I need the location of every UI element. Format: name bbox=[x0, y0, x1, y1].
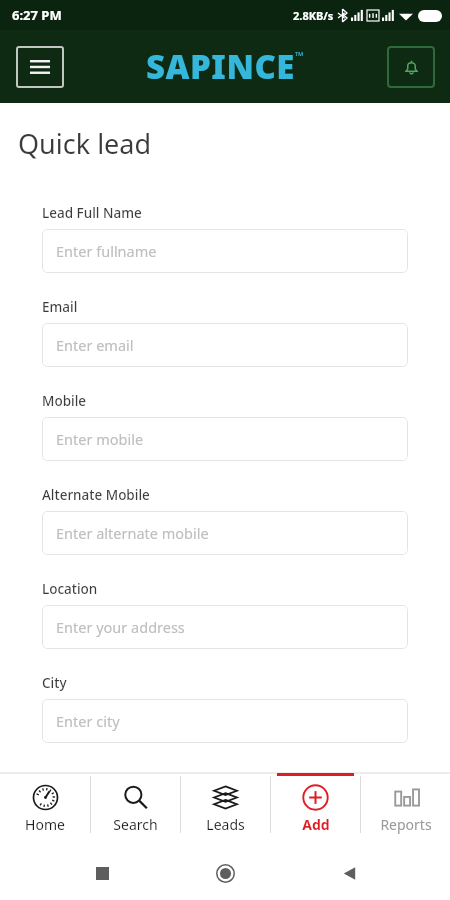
staticText: 6:27 PM bbox=[12, 6, 62, 24]
button[interactable]: Reports bbox=[361, 773, 450, 845]
button[interactable]: Enter mobile bbox=[42, 417, 408, 461]
staticText: Email bbox=[42, 298, 78, 316]
staticText: Mobile bbox=[42, 392, 87, 410]
button[interactable]: Notifications bbox=[387, 46, 435, 88]
button[interactable]: Enter your address bbox=[42, 605, 408, 649]
button[interactable]: Enter alternate mobile bbox=[42, 511, 408, 555]
staticText: Home bbox=[25, 815, 65, 834]
button[interactable]: Enter email bbox=[42, 323, 408, 367]
button[interactable]: Enter city bbox=[42, 699, 408, 743]
staticText: Enter alternate mobile bbox=[56, 523, 209, 543]
staticText: ™ bbox=[295, 48, 304, 63]
button[interactable]: Enter fullname bbox=[42, 229, 408, 273]
staticText: Reports bbox=[380, 815, 432, 834]
staticText: Alternate Mobile bbox=[42, 486, 150, 504]
staticText: Location bbox=[42, 580, 98, 598]
staticText: Lead Full Name bbox=[42, 204, 142, 222]
staticText: 2.8KB/s bbox=[293, 8, 334, 23]
button[interactable]: Home bbox=[203, 851, 247, 895]
staticText: Leads bbox=[206, 815, 245, 834]
staticText: Enter email bbox=[56, 335, 134, 355]
staticText: Enter mobile bbox=[56, 429, 144, 449]
button[interactable]: Add bbox=[271, 773, 360, 845]
button[interactable]: Home bbox=[0, 773, 90, 845]
button[interactable]: Leads bbox=[181, 773, 270, 845]
staticText: SAPINCE bbox=[146, 44, 295, 89]
staticText: Quick lead bbox=[18, 125, 152, 162]
button[interactable]: Menu bbox=[16, 46, 64, 88]
staticText: Enter your address bbox=[56, 617, 185, 637]
button[interactable]: Search bbox=[91, 773, 180, 845]
button[interactable]: Back bbox=[327, 851, 371, 895]
staticText: Enter fullname bbox=[56, 241, 157, 261]
staticText: Add bbox=[302, 815, 330, 834]
staticText: Search bbox=[113, 815, 158, 834]
button[interactable]: Recent apps bbox=[80, 851, 124, 895]
staticText: Enter city bbox=[56, 711, 120, 731]
staticText: City bbox=[42, 674, 67, 692]
